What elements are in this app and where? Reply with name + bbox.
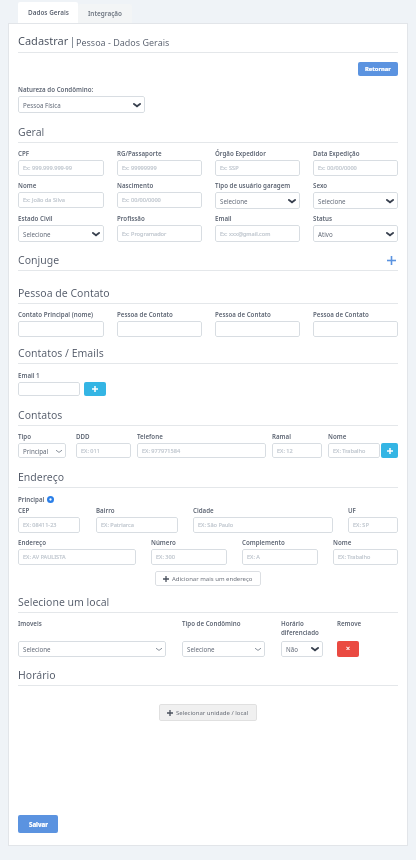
staticText: Ex: Programador xyxy=(122,230,167,238)
staticText: Nome xyxy=(333,538,352,546)
staticText: Ex: 999.999.999-99 xyxy=(23,164,73,172)
staticText: EX: Patriarca xyxy=(101,521,134,529)
staticText: Ex: João da Silva xyxy=(23,196,65,204)
button[interactable]: Remover xyxy=(337,641,359,657)
staticText: Pessoa de Contato xyxy=(215,310,271,318)
staticText: Ativo xyxy=(318,230,333,238)
button[interactable]: Selecione xyxy=(313,192,398,209)
button[interactable]: Ex: 00/00/0000 xyxy=(117,192,202,208)
staticText: EX: 011 xyxy=(81,447,100,455)
staticText: Ex: 99999999 xyxy=(122,164,157,172)
staticText: Pessoa de Contato xyxy=(313,310,369,318)
button[interactable]: EX: Trabalho xyxy=(333,549,398,565)
staticText: Sexo xyxy=(313,181,328,189)
staticText: Pessoa de Contato xyxy=(18,286,110,300)
staticText: Selecione xyxy=(220,197,248,205)
staticText: Imoveis xyxy=(18,619,42,627)
staticText: EX: 08411-23 xyxy=(23,521,57,529)
button[interactable]: Adicionar xyxy=(84,382,106,396)
staticText: × xyxy=(346,644,351,654)
button[interactable]: Ex: 999.999.999-99 xyxy=(18,160,104,176)
button[interactable]: EX: Patriarca xyxy=(96,517,178,533)
staticText: Ex: 00/00/0000 xyxy=(122,196,161,204)
staticText: EX: São Paulo xyxy=(198,521,234,529)
button[interactable] xyxy=(18,382,80,396)
staticText: Nome xyxy=(328,432,347,440)
button[interactable] xyxy=(313,321,398,337)
staticText: Complemento xyxy=(242,538,285,546)
button[interactable]: Endereço principal xyxy=(47,496,54,503)
staticText: Cidade xyxy=(193,506,214,514)
staticText: CEP xyxy=(18,506,30,514)
staticText: CPF xyxy=(18,149,30,157)
staticText: Selecione um local xyxy=(18,595,110,609)
staticText: Horário diferenciado xyxy=(281,619,319,637)
staticText: Cadastrar xyxy=(18,33,69,48)
button[interactable] xyxy=(117,321,202,337)
button[interactable]: EX: A xyxy=(242,549,318,565)
staticText: Profissão xyxy=(117,214,145,222)
button[interactable]: Ex: Programador xyxy=(117,225,202,242)
button[interactable]: EX: 300 xyxy=(151,549,227,565)
button[interactable]: Integração xyxy=(78,4,132,23)
staticText: Dados Gerais xyxy=(28,8,69,17)
staticText: UF xyxy=(348,506,356,514)
button[interactable]: Selecione xyxy=(215,192,300,209)
staticText: EX: 977971584 xyxy=(142,447,181,455)
staticText: Ex: xxx@gmail.com xyxy=(220,230,271,238)
button[interactable]: Adicionar xyxy=(381,443,398,458)
button[interactable]: Pessoa Física xyxy=(18,96,145,113)
staticText: Principal xyxy=(18,495,45,503)
staticText: Email xyxy=(215,214,232,222)
button[interactable]: Não xyxy=(281,641,323,657)
staticText: Status xyxy=(313,214,333,222)
button[interactable]: Adicionar mais um endereço xyxy=(155,571,261,586)
button[interactable]: Principal xyxy=(18,443,66,458)
button[interactable]: EX: 08411-23 xyxy=(18,517,80,533)
button[interactable]: Ex: xxx@gmail.com xyxy=(215,225,300,242)
button[interactable]: Ex: SSP xyxy=(215,160,300,176)
staticText: Número xyxy=(151,538,176,546)
staticText: Email 1 xyxy=(18,371,40,379)
staticText: Selecione xyxy=(23,230,51,238)
staticText: Telefone xyxy=(137,432,163,440)
button[interactable] xyxy=(18,321,104,337)
button[interactable]: EX: Trabalho xyxy=(328,443,380,458)
staticText: EX: 300 xyxy=(156,553,175,561)
button[interactable]: Salvar xyxy=(18,815,58,833)
staticText: EX: 12 xyxy=(277,447,293,455)
staticText: Ramal xyxy=(272,432,291,440)
button[interactable]: Ex: 99999999 xyxy=(117,160,202,176)
button[interactable]: EX: São Paulo xyxy=(193,517,333,533)
button[interactable] xyxy=(215,321,300,337)
staticText: Tipo xyxy=(18,432,31,440)
button[interactable]: Retornar xyxy=(358,62,398,76)
staticText: Integração xyxy=(88,9,123,18)
staticText: EX: Trabalho xyxy=(338,553,371,561)
staticText: Remover xyxy=(337,619,363,627)
button[interactable]: EX: SP xyxy=(348,517,398,533)
button[interactable]: Selecione xyxy=(182,641,265,657)
staticText: Estado Civil xyxy=(18,214,53,222)
button[interactable]: Selecionar unidade / local xyxy=(159,704,257,721)
button[interactable]: Ativo xyxy=(313,225,398,242)
button[interactable]: Selecione xyxy=(18,641,166,657)
button[interactable]: Ex: 00/00/0000 xyxy=(313,160,398,176)
button[interactable]: Ex: João da Silva xyxy=(18,192,104,208)
button[interactable]: EX: 011 xyxy=(76,443,131,458)
staticText: Órgão Expedidor xyxy=(215,149,266,157)
staticText: EX: SP xyxy=(353,521,369,529)
button[interactable]: EX: AV PAULISTA xyxy=(18,549,136,565)
staticText: DDD xyxy=(76,432,90,440)
staticText: Endereço xyxy=(18,470,65,484)
staticText: Ex: 00/00/0000 xyxy=(318,164,357,172)
button[interactable]: Adicionar conjuge xyxy=(384,253,398,267)
button[interactable]: Dados Gerais xyxy=(18,2,78,23)
staticText: RG/Passaporte xyxy=(117,149,162,157)
staticText: Natureza do Condômino: xyxy=(18,85,94,93)
button[interactable]: EX: 12 xyxy=(272,443,322,458)
button[interactable]: Selecione xyxy=(18,225,104,242)
staticText: Pessoa de Contato xyxy=(117,310,173,318)
staticText: Pessoa - Dados Gerais xyxy=(76,36,170,48)
button[interactable]: EX: 977971584 xyxy=(137,443,266,458)
